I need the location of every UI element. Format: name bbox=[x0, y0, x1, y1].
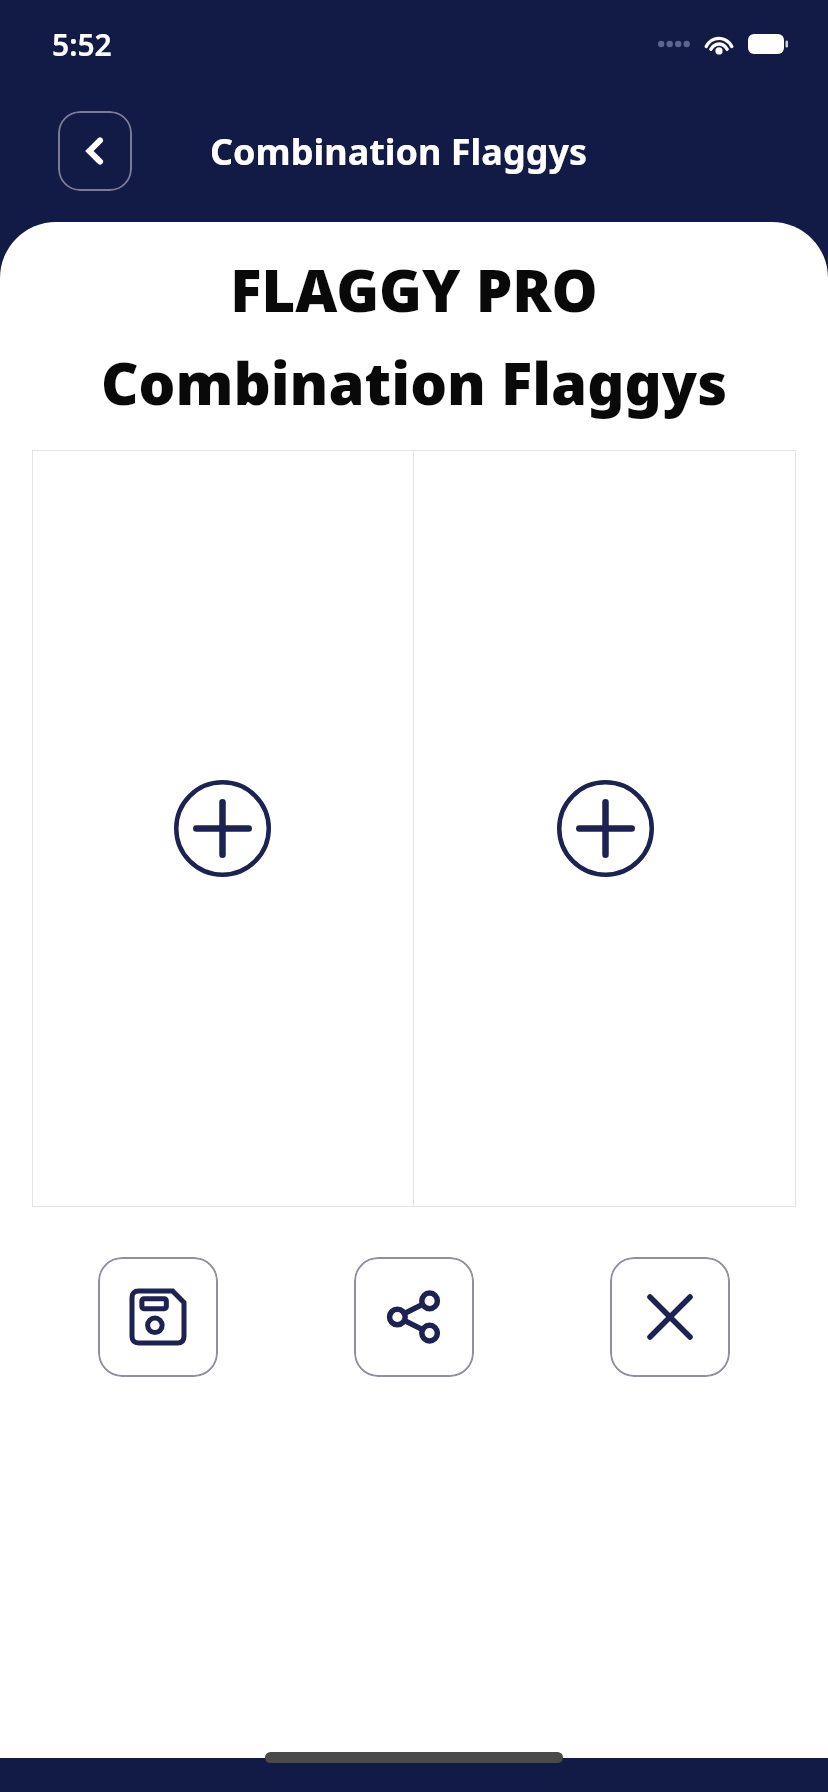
button[interactable]: Back bbox=[58, 111, 132, 191]
staticText: Combination Flaggys bbox=[0, 343, 828, 422]
button[interactable]: Add second flag bbox=[414, 450, 796, 1207]
button[interactable]: Save bbox=[98, 1257, 218, 1377]
button[interactable]: Share bbox=[354, 1257, 474, 1377]
button[interactable]: Close bbox=[610, 1257, 730, 1377]
staticText: Combination Flaggys bbox=[210, 127, 588, 176]
button[interactable]: Add first flag bbox=[32, 450, 413, 1207]
staticText: FLAGGY PRO bbox=[0, 250, 828, 329]
staticText: 5:52 bbox=[52, 24, 112, 65]
